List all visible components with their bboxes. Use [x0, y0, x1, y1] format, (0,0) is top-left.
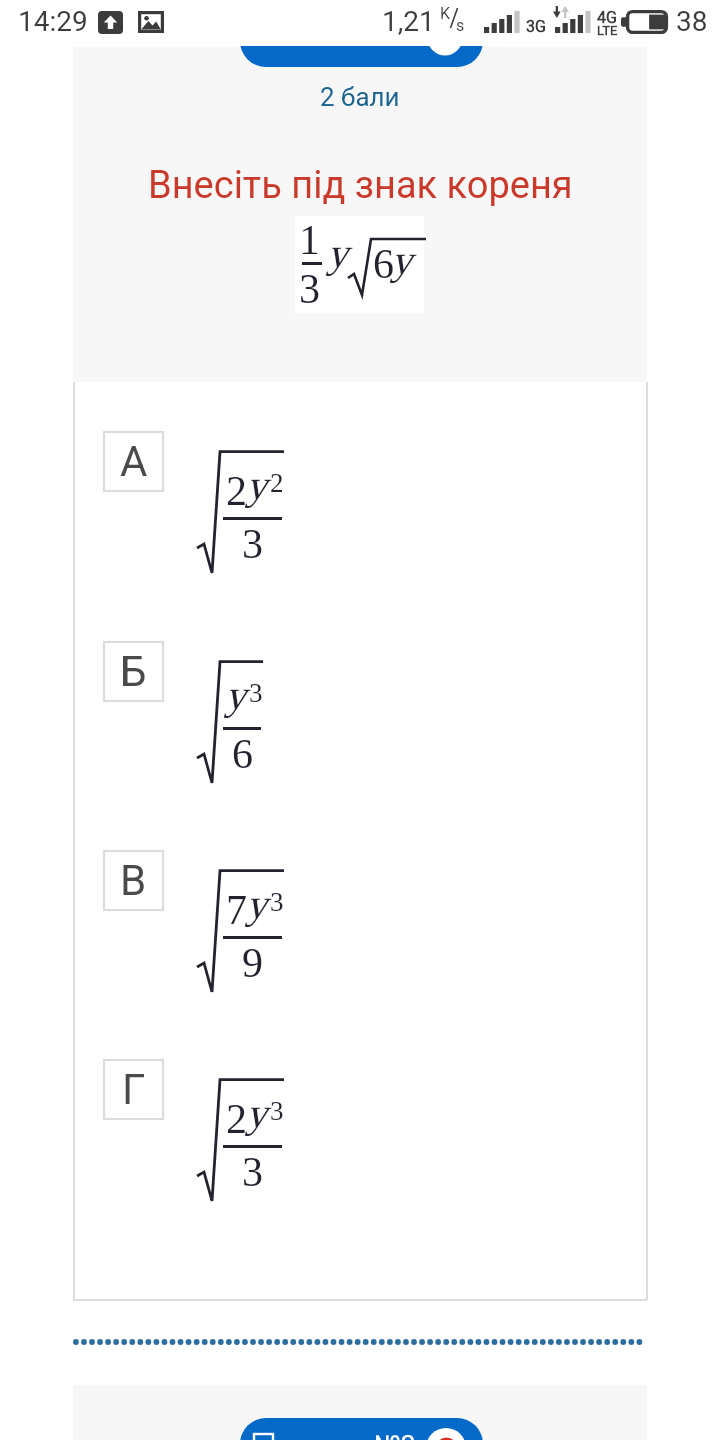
button[interactable]: Next question — [240, 1418, 483, 1440]
button[interactable]: В — [104, 851, 163, 910]
staticText: K — [440, 4, 451, 23]
other: Battery — [621, 10, 668, 34]
staticText: 14:29 — [18, 5, 88, 38]
staticText: 3 — [270, 1096, 284, 1126]
staticText: s — [456, 16, 465, 35]
staticText: y — [246, 881, 267, 928]
staticText: №2 — [374, 1430, 416, 1440]
staticText: 3 — [299, 266, 320, 313]
staticText: В — [120, 856, 147, 905]
other: Screenshot — [138, 11, 164, 33]
staticText: 3 — [242, 521, 263, 568]
staticText: 2 бали — [320, 82, 400, 112]
button[interactable]: Г — [104, 1060, 163, 1119]
staticText: 2 — [270, 468, 284, 498]
staticText: y — [327, 230, 348, 277]
button[interactable]: А — [104, 432, 163, 491]
staticText: 1 — [299, 217, 320, 264]
staticText: y — [246, 1090, 267, 1137]
staticText: 38 — [676, 5, 708, 38]
staticText: 3G — [526, 17, 546, 36]
staticText: 3 — [270, 887, 284, 917]
staticText: y — [246, 462, 267, 509]
staticText: Б — [120, 647, 147, 696]
staticText: 6 — [373, 241, 394, 288]
staticText: Внесіть під знак кореня — [148, 163, 573, 208]
staticText: Г — [122, 1065, 146, 1114]
staticText: А — [120, 437, 148, 486]
staticText: 9 — [242, 940, 263, 987]
button[interactable]: Question number — [230, 46, 500, 68]
staticText: 3 — [242, 1149, 263, 1196]
staticText: 2 — [226, 468, 247, 515]
staticText: LTE — [597, 23, 618, 38]
staticText: 2 — [226, 1096, 247, 1143]
staticText: 1,21 — [382, 5, 435, 38]
button[interactable]: Б — [104, 642, 163, 701]
staticText: 3 — [249, 678, 263, 708]
staticText: y — [391, 237, 412, 284]
staticText: y — [225, 672, 246, 719]
staticText: 6 — [232, 731, 253, 778]
staticText: 4G — [597, 8, 617, 27]
staticText: 7 — [226, 887, 247, 934]
other: Upload — [98, 11, 123, 34]
